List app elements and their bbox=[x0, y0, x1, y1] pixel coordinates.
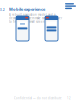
staticText: A rebuilt navigation model and a cleaner… bbox=[9, 13, 62, 23]
staticText: 12 bbox=[67, 96, 71, 100]
staticText: Confidential — do not distribute bbox=[14, 96, 62, 100]
staticText: 3.2 bbox=[0, 8, 5, 12]
staticText: Mobile experience bbox=[9, 6, 45, 12]
button[interactable]: Company logo bbox=[65, 3, 77, 10]
